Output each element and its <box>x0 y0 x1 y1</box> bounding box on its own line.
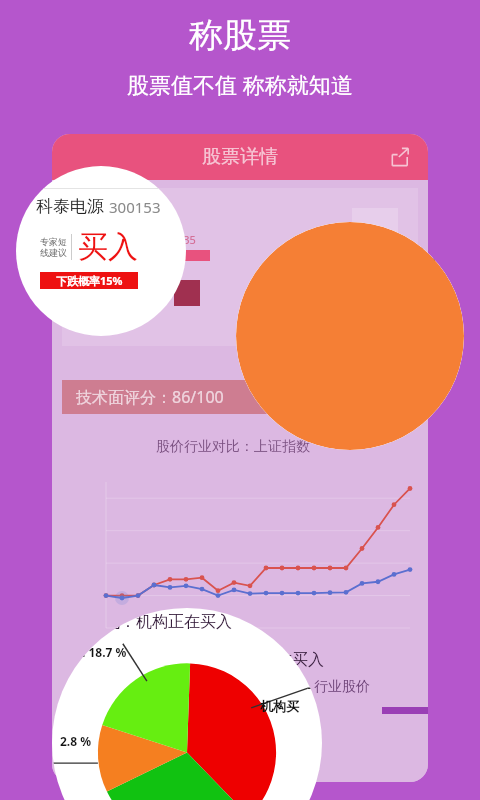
button[interactable]: 力状况：机构正在买入 <box>52 608 322 800</box>
button[interactable]: 下跌概率15% <box>40 272 138 289</box>
button[interactable]: 技术面评分：86/100 <box>62 380 294 414</box>
staticText: 出: 18.7 % <box>70 644 127 660</box>
staticText: 股票值不值 称称就知道 <box>127 69 353 99</box>
button[interactable]: 7.35 <box>236 222 464 450</box>
staticText: 股价行业对比：上证指数 <box>156 438 310 456</box>
staticText: 称股票 <box>189 14 291 57</box>
staticText: 300153 <box>109 197 161 217</box>
staticText: 线建议 <box>40 247 67 258</box>
button[interactable]: 股票详情 <box>52 134 428 782</box>
staticText: 7.35 <box>174 232 196 247</box>
staticText: 2.8 % <box>60 733 92 749</box>
staticText: 专家短 <box>40 236 67 247</box>
staticText: 技术面评分：86/100 <box>76 386 224 408</box>
staticText: 机构买 <box>260 698 299 714</box>
staticText: + <box>370 212 380 235</box>
staticText: 科泰电源 <box>36 196 104 217</box>
button[interactable]: 股票详情 <box>52 134 428 180</box>
staticText: 主力状况：机构正在买入 <box>148 650 324 670</box>
staticText: 下跌概率15% <box>56 273 123 288</box>
staticText: 买入 <box>78 228 138 266</box>
button[interactable]: + <box>352 208 398 238</box>
staticText: 行业股价 <box>314 678 370 696</box>
staticText: 力状况：机构正在买入 <box>72 612 232 632</box>
button[interactable]: 科泰电源 <box>16 166 186 336</box>
staticText: 股票详情 <box>202 145 278 169</box>
button[interactable]: Share <box>388 145 412 169</box>
